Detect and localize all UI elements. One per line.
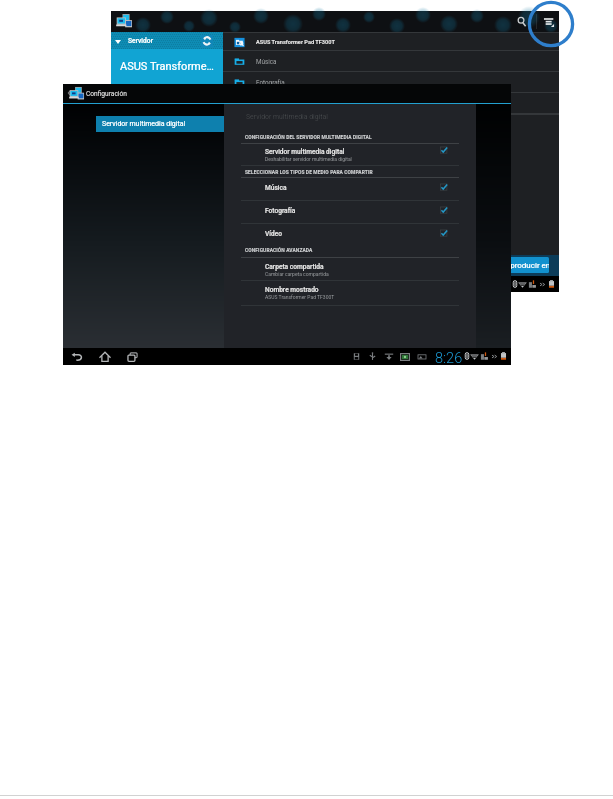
staticText: Cambiar carpeta compartida — [265, 271, 329, 277]
staticText: CONFIGURACIÓN DEL SERVIDOR MULTIMEDIA DI… — [245, 134, 372, 140]
staticText: Configuración — [86, 90, 127, 98]
button[interactable]: ASUS Transformer Pad TF300T — [223, 33, 559, 51]
button[interactable] — [224, 144, 476, 166]
button[interactable]: ASUS Transforme… — [111, 49, 223, 84]
button[interactable] — [224, 180, 476, 200]
staticText: Servidor multimedia digital — [102, 120, 186, 128]
staticText: Fotografía — [265, 207, 296, 215]
button[interactable] — [245, 163, 497, 178]
button[interactable]: Reproducir en — [494, 257, 549, 273]
button[interactable]: Servidor multimedia digital — [96, 116, 224, 132]
button[interactable]: Vídeo — [223, 93, 559, 114]
button[interactable] — [224, 259, 476, 281]
button[interactable] — [245, 241, 497, 256]
staticText: SELECCIONAR LOS TIPOS DE MEDIO PARA COMP… — [245, 169, 373, 175]
staticText: Deshabilitar servidor multimedia digital — [265, 156, 352, 162]
staticText: ASUS Transforme… — [120, 60, 214, 73]
button[interactable]: Search — [516, 16, 528, 28]
button[interactable] — [224, 282, 476, 305]
staticText: Reproducir en — [501, 261, 549, 270]
staticText: 8:26 — [435, 350, 463, 367]
button[interactable]: Refresh — [201, 35, 213, 47]
staticText: Servidor multimedia digital — [265, 148, 345, 156]
staticText: Nombre mostrado — [265, 286, 319, 294]
staticText: Música — [265, 184, 287, 192]
staticText: Vídeo — [265, 230, 282, 238]
button[interactable]: Música — [223, 51, 559, 72]
button[interactable]: Home — [99, 351, 111, 363]
staticText: Servidor multimedia digital — [246, 113, 328, 121]
button[interactable]: More options — [543, 16, 555, 28]
button[interactable]: Fotografía — [223, 72, 559, 93]
staticText: Vídeo — [256, 100, 273, 107]
staticText: ASUS Transformer Pad TF300T — [265, 294, 335, 300]
button[interactable] — [224, 203, 476, 224]
staticText: Carpeta compartida — [265, 263, 324, 271]
staticText: Fotografía — [256, 79, 285, 86]
staticText: Música — [256, 58, 277, 65]
staticText: Servidor — [128, 37, 154, 45]
button[interactable]: Recent apps — [127, 351, 139, 363]
button[interactable] — [224, 226, 476, 243]
staticText: CONFIGURACIÓN AVANZADA — [245, 247, 313, 253]
button[interactable]: Servidor — [111, 32, 223, 49]
button[interactable]: Back — [71, 351, 83, 363]
button[interactable] — [245, 128, 497, 143]
staticText: ASUS Transformer Pad TF300T — [256, 39, 335, 46]
